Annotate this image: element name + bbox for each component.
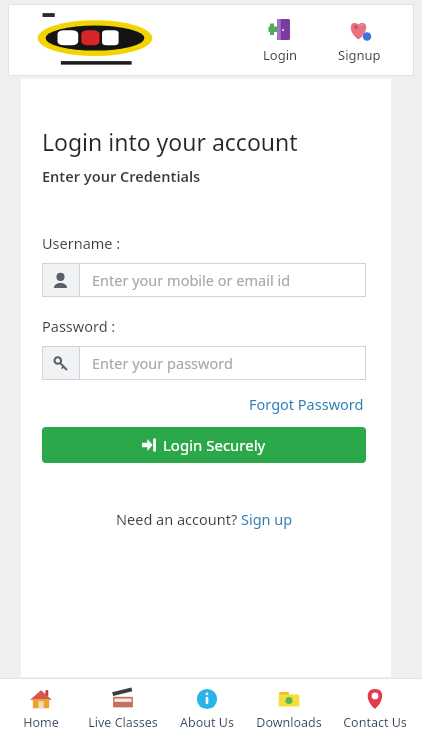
button[interactable]: Home [4, 679, 78, 740]
staticText: Enter your password [92, 353, 233, 373]
staticText: Live Classes [88, 714, 158, 731]
staticText: Home [23, 714, 59, 731]
staticText: Login [263, 46, 298, 64]
staticText: Enter your Credentials [42, 166, 201, 186]
button[interactable]: Live Classes [78, 679, 168, 740]
button[interactable]: Sign up [241, 509, 293, 529]
button[interactable]: Login Securely [42, 427, 366, 463]
button[interactable]: Signup [335, 15, 384, 66]
staticText: Downloads [256, 714, 322, 731]
button[interactable]: Login [260, 15, 301, 66]
button[interactable]: Username field [42, 263, 366, 297]
button[interactable]: Contact Us [332, 679, 418, 740]
staticText: Password : [42, 316, 116, 336]
staticText: Username : [42, 233, 121, 253]
button[interactable]: About Us [168, 679, 246, 740]
staticText: Signup [338, 46, 381, 64]
staticText: Contact Us [343, 714, 407, 731]
button[interactable]: Downloads [246, 679, 332, 740]
button[interactable]: DSL logo home [34, 8, 156, 72]
staticText: Need an account? [116, 509, 241, 529]
staticText: Forgot Password [249, 394, 364, 414]
button[interactable]: Password field [42, 346, 366, 380]
staticText: About Us [180, 714, 234, 731]
staticText: Login into your account [42, 126, 298, 157]
staticText: Login Securely [163, 435, 266, 455]
staticText: Enter your mobile or email id [92, 270, 291, 290]
button[interactable]: Forgot Password [247, 392, 366, 416]
staticText: Sign up [241, 509, 293, 529]
